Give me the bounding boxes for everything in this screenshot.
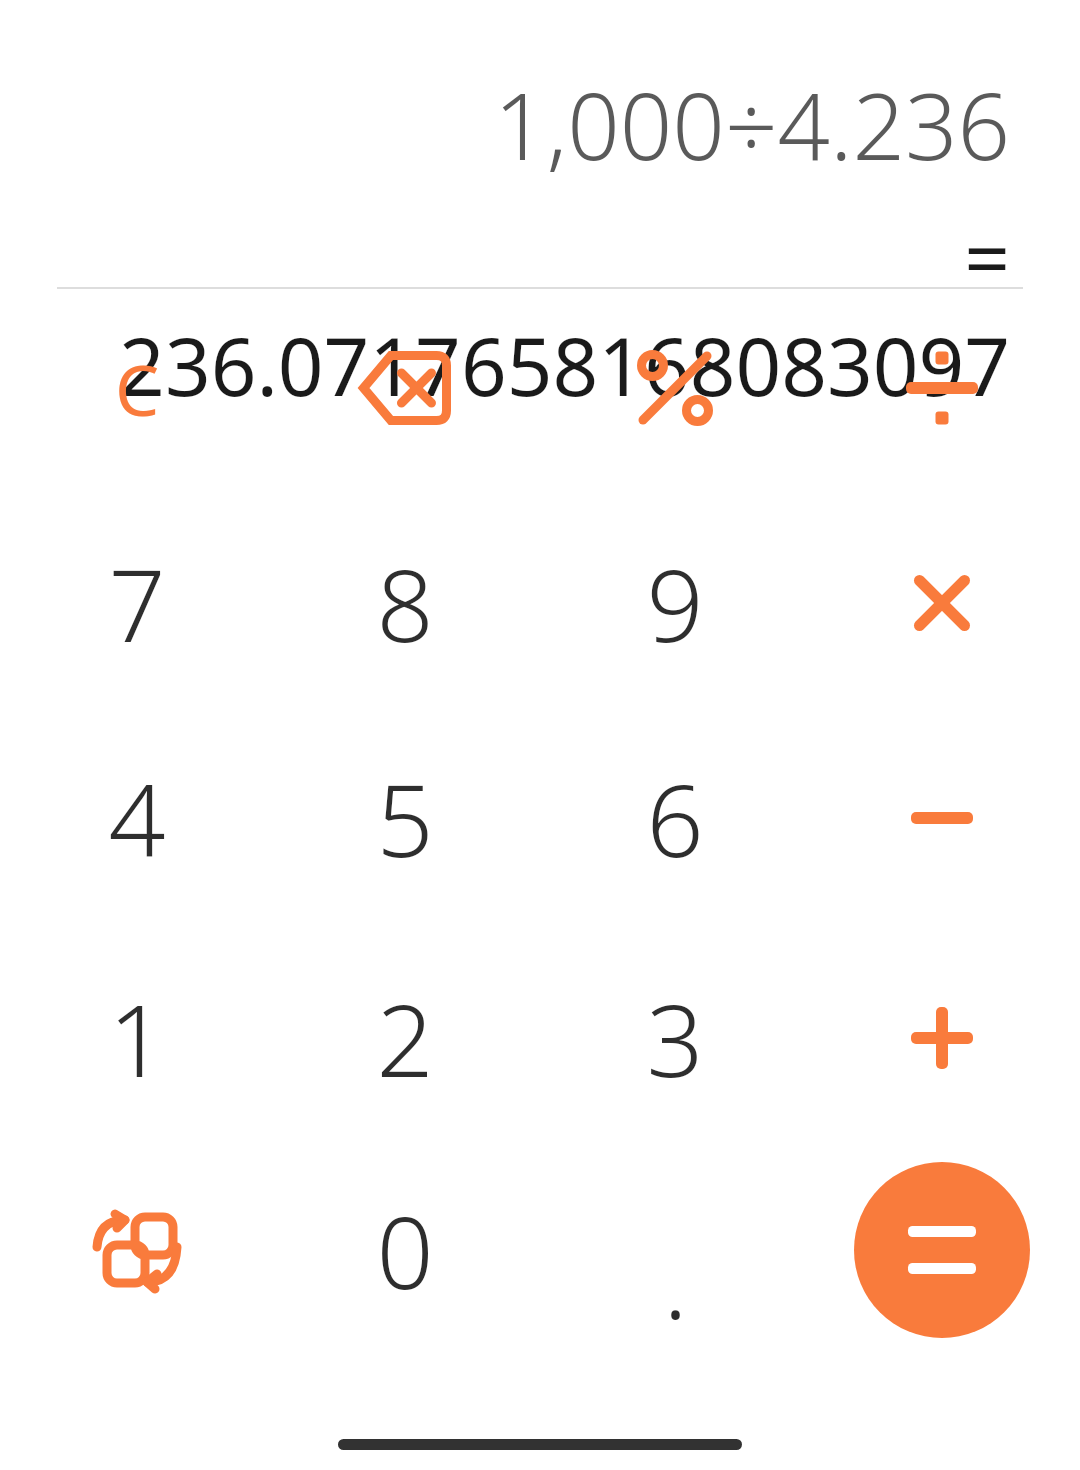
button[interactable] (807, 288, 1077, 488)
staticText: 3 (646, 970, 704, 1106)
staticText: 9 (646, 535, 704, 671)
button[interactable]: 2 (270, 938, 540, 1138)
staticText: 0 (376, 1182, 434, 1318)
button[interactable]: Backspace (270, 288, 540, 488)
button[interactable] (807, 503, 1077, 703)
staticText: 1 (108, 970, 166, 1106)
staticText: 2 (376, 970, 434, 1106)
staticText: . (663, 1212, 688, 1348)
button[interactable]: 5 (270, 718, 540, 918)
button[interactable]: 0 (270, 1150, 540, 1350)
button[interactable]: 1 (2, 938, 272, 1138)
button[interactable]: Equals (854, 1162, 1030, 1338)
staticText: 4 (108, 750, 166, 886)
staticText: 7 (108, 535, 166, 671)
button[interactable] (540, 288, 810, 488)
staticText: 8 (376, 535, 434, 671)
staticText: 6 (646, 750, 704, 886)
button[interactable]: 9 (540, 503, 810, 703)
button[interactable]: 7 (2, 503, 272, 703)
button[interactable]: . (540, 1150, 810, 1350)
staticText: 1,000÷4.236 (70, 62, 1010, 187)
staticText: = 236.0717658168083097 (70, 201, 1010, 419)
staticText: C (115, 341, 160, 436)
button[interactable]: C (2, 288, 272, 488)
button[interactable]: 3 (540, 938, 810, 1138)
button[interactable]: Convert units (2, 1150, 272, 1350)
button[interactable]: 4 (2, 718, 272, 918)
button[interactable]: 6 (540, 718, 810, 918)
button[interactable] (807, 938, 1077, 1138)
staticText: 5 (376, 750, 434, 886)
button[interactable] (807, 718, 1077, 918)
button[interactable]: 8 (270, 503, 540, 703)
